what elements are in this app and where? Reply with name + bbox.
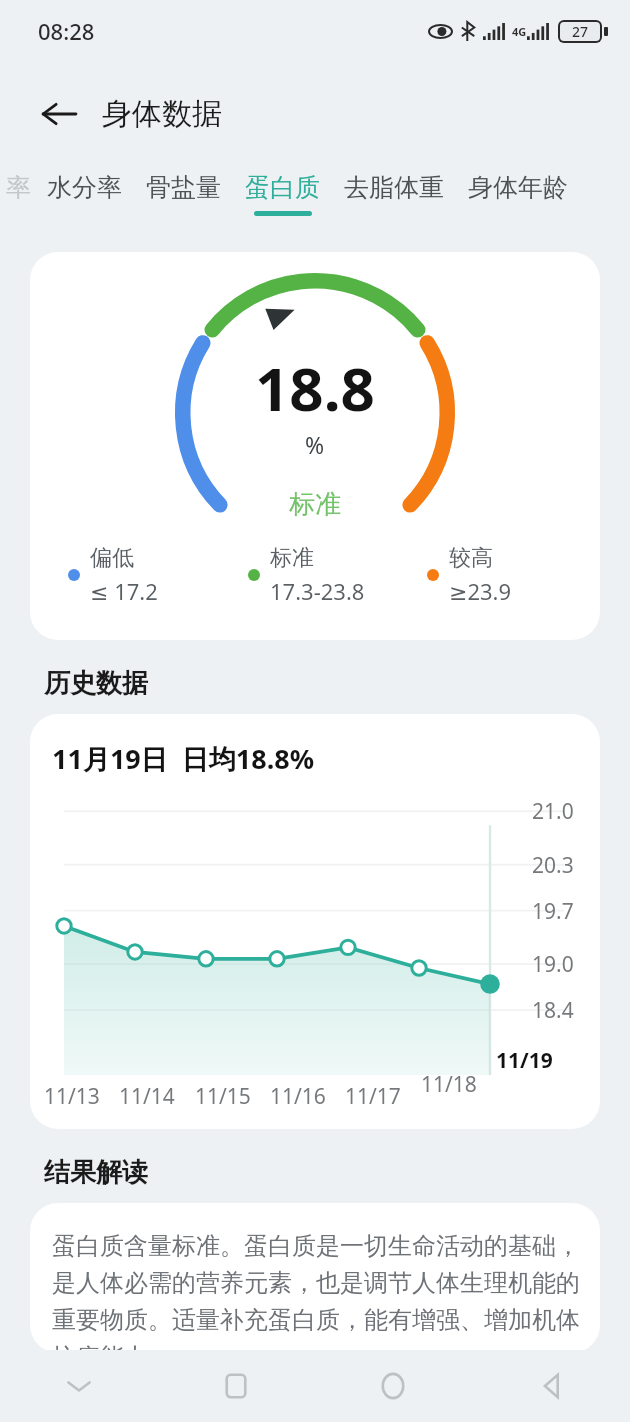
- staticText: 结果解读: [44, 1156, 148, 1189]
- button[interactable]: Home: [314, 1350, 472, 1422]
- button[interactable]: Hide keyboard: [0, 1350, 157, 1422]
- staticText: 17.3-23.8: [270, 576, 365, 606]
- staticText: 标准: [270, 544, 314, 572]
- button[interactable]: 去脂体重: [344, 166, 444, 211]
- staticText: 11/16: [270, 1082, 326, 1111]
- staticText: 去脂体重: [344, 172, 444, 203]
- staticText: 4G: [512, 24, 527, 39]
- staticText: 08:28: [38, 16, 95, 46]
- staticText: 11/19: [496, 1046, 553, 1075]
- staticText: ≥23.9: [449, 576, 512, 606]
- staticText: 11/13: [44, 1082, 100, 1111]
- staticText: 11/15: [195, 1082, 251, 1111]
- button[interactable]: Recents: [157, 1350, 314, 1422]
- staticText: 蛋白质: [245, 172, 320, 203]
- staticText: 历史数据: [44, 667, 148, 700]
- staticText: 18.8: [255, 347, 375, 429]
- button[interactable]: 水分率: [47, 166, 122, 211]
- button[interactable]: Back: [472, 1350, 630, 1422]
- button[interactable]: Back: [34, 89, 84, 139]
- staticText: 蛋白质含量标准。蛋白质是一切生命活动的基础，是人体必需的营养元素，也是调节人体生…: [52, 1231, 584, 1353]
- staticText: %: [305, 429, 325, 460]
- staticText: 11/18: [421, 1070, 477, 1099]
- staticText: 偏低: [90, 544, 134, 572]
- staticText: 19.7: [532, 897, 574, 926]
- staticText: 19.0: [532, 950, 574, 979]
- staticText: 27: [572, 22, 589, 41]
- staticText: 11/14: [119, 1082, 175, 1111]
- staticText: 21.0: [532, 797, 574, 826]
- staticText: 水分率: [47, 172, 122, 203]
- button[interactable]: 蛋白质: [245, 166, 320, 216]
- staticText: 18.4: [532, 996, 574, 1025]
- staticText: 身体年龄: [468, 172, 568, 203]
- staticText: 11月19日 日均18.8%: [52, 740, 315, 777]
- staticText: 骨盐量: [146, 172, 221, 203]
- staticText: 率: [6, 172, 31, 203]
- staticText: 20.3: [532, 851, 574, 880]
- staticText: 身体数据: [102, 95, 222, 133]
- button[interactable]: 骨盐量: [146, 166, 221, 211]
- staticText: 标准: [289, 488, 341, 520]
- staticText: 11/17: [345, 1082, 401, 1111]
- staticText: ≤ 17.2: [90, 576, 158, 606]
- button[interactable]: 率: [6, 166, 31, 211]
- staticText: 较高: [449, 544, 493, 572]
- button[interactable]: 身体年龄: [468, 166, 568, 211]
